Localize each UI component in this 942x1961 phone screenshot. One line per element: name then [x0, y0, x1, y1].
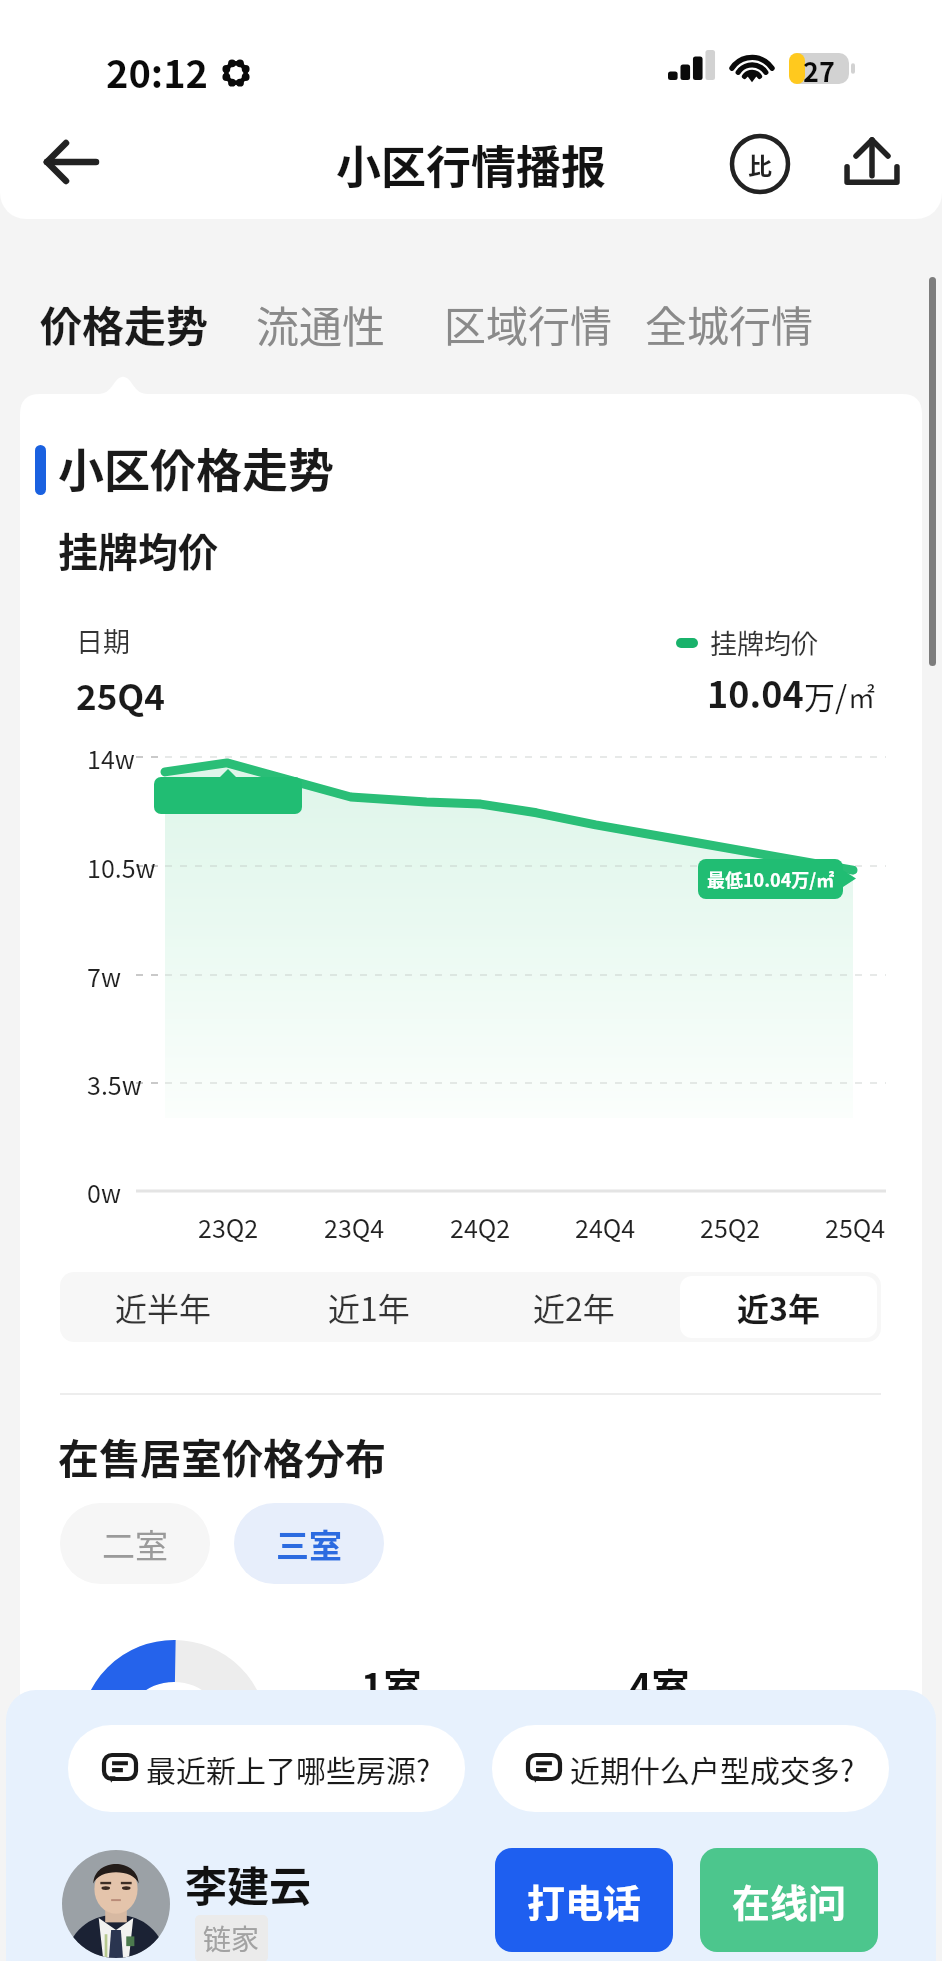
button[interactable]: Compare — [729, 133, 791, 195]
button[interactable]: Share — [840, 131, 904, 195]
staticText: 最近新上了哪些房源? — [146, 1747, 431, 1790]
staticText: 在售居室价格分布 — [58, 1426, 386, 1485]
staticText: 4室 — [629, 1657, 690, 1712]
button[interactable]: 近期什么户型成交多? — [492, 1725, 889, 1812]
staticText: 最低10.04万/㎡ — [707, 866, 835, 892]
staticText: 23Q4 — [324, 1209, 385, 1245]
staticText: 近半年 — [115, 1284, 212, 1330]
staticText: 近2年 — [533, 1284, 615, 1330]
button[interactable]: 流通性 — [256, 293, 385, 355]
button[interactable]: 近1年 — [270, 1276, 467, 1338]
staticText: 日期 — [76, 621, 130, 660]
staticText: 万 — [804, 673, 835, 718]
staticText: 25Q2 — [700, 1209, 761, 1245]
button[interactable]: 最近新上了哪些房源? — [68, 1725, 465, 1812]
button[interactable]: 全城行情 — [645, 293, 814, 354]
staticText: 区域行情 — [444, 293, 613, 354]
staticText: 全城行情 — [645, 293, 814, 354]
button[interactable]: 区域行情 — [444, 293, 613, 354]
staticText: 20:12 — [106, 44, 209, 99]
staticText: 李建云 — [185, 1853, 312, 1914]
staticText: 价格走势 — [40, 293, 209, 354]
staticText: 27 — [803, 51, 835, 82]
staticText: 近1年 — [328, 1284, 410, 1330]
button[interactable]: 三室 — [234, 1503, 384, 1584]
button[interactable]: 近3年 — [680, 1276, 877, 1338]
button[interactable]: 打电话 — [495, 1848, 673, 1952]
button[interactable]: 近半年 — [64, 1276, 262, 1338]
staticText: 二室 — [102, 1520, 168, 1568]
staticText: 在线问 — [732, 1873, 847, 1928]
staticText: 23Q2 — [198, 1209, 259, 1245]
staticText: 小区行情播报 — [336, 132, 607, 197]
staticText: 挂牌均价 — [710, 623, 818, 662]
staticText: 10.04 — [707, 666, 804, 718]
staticText: 25Q4 — [825, 1209, 886, 1245]
staticText: 三室 — [276, 1520, 342, 1568]
staticText: ㎡ — [848, 677, 875, 716]
staticText: 24Q4 — [575, 1209, 636, 1245]
staticText: 小区价格走势 — [58, 434, 334, 501]
staticText: 近3年 — [737, 1284, 820, 1330]
staticText: 0w — [87, 1174, 121, 1210]
staticText: 链家 — [203, 1918, 260, 1959]
staticText: 挂牌均价 — [58, 521, 218, 579]
staticText: 打电话 — [527, 1873, 642, 1928]
staticText: 24Q2 — [450, 1209, 511, 1245]
staticText: 1室 — [361, 1657, 422, 1712]
staticText: 7w — [87, 958, 121, 994]
staticText: 近期什么户型成交多? — [570, 1747, 855, 1790]
staticText: 3.5w — [87, 1066, 142, 1102]
staticText: / — [835, 673, 848, 718]
button[interactable]: 在线问 — [700, 1848, 878, 1952]
staticText: 25Q4 — [76, 669, 165, 720]
button[interactable]: 价格走势 — [40, 293, 209, 354]
button[interactable]: Back — [36, 132, 108, 194]
button[interactable]: 近2年 — [475, 1276, 672, 1338]
staticText: 10.5w — [87, 849, 156, 885]
staticText: 流通性 — [256, 293, 385, 355]
staticText: 14w — [87, 740, 135, 776]
button[interactable]: 二室 — [60, 1503, 210, 1584]
staticText: 比 — [748, 147, 772, 182]
